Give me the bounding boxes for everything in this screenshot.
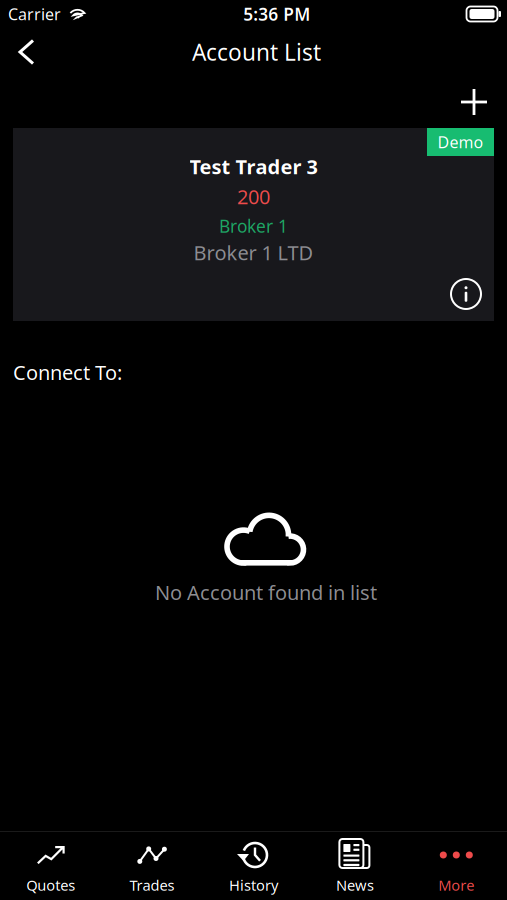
staticText: Demo <box>437 131 483 153</box>
button[interactable]: Add account <box>450 83 498 121</box>
staticText: Account List <box>192 37 321 67</box>
staticText: Connect To: <box>13 359 122 386</box>
button[interactable]: Trades <box>101 832 203 900</box>
button[interactable]: Demo <box>13 128 494 321</box>
button[interactable]: News <box>304 832 406 900</box>
staticText: Trades <box>130 875 175 895</box>
button[interactable]: More <box>406 832 507 900</box>
staticText: Test Trader 3 <box>189 153 317 180</box>
staticText: 200 <box>237 183 270 210</box>
staticText: History <box>229 875 278 895</box>
staticText: No Account found in list <box>155 579 377 606</box>
staticText: Quotes <box>26 875 75 895</box>
button[interactable]: Back <box>0 28 49 75</box>
staticText: 5:36 PM <box>243 2 310 25</box>
button[interactable]: History <box>203 832 304 900</box>
staticText: More <box>438 875 474 895</box>
staticText: Broker 1 LTD <box>193 239 313 266</box>
staticText: News <box>336 875 374 895</box>
button[interactable]: Account info <box>450 278 494 321</box>
button[interactable]: Quotes <box>0 832 101 900</box>
staticText: Broker 1 <box>219 214 288 237</box>
staticText: Carrier <box>8 3 61 25</box>
